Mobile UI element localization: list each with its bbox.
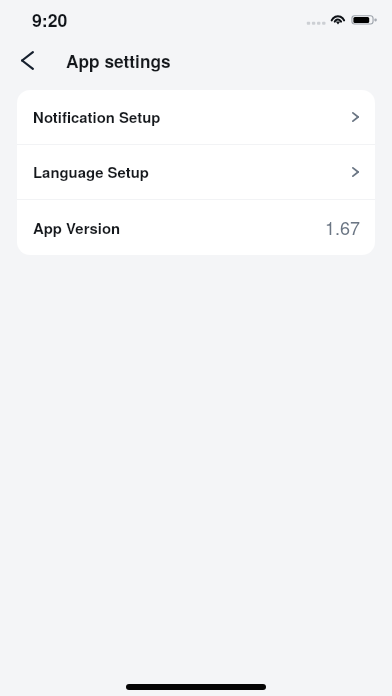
button[interactable]: Language Setup <box>17 145 375 199</box>
staticText: 1.67 <box>325 214 361 240</box>
button[interactable]: Notification Setup <box>17 90 375 144</box>
staticText: Language Setup <box>33 161 149 182</box>
staticText: App Version <box>33 217 121 238</box>
staticText: Notification Setup <box>33 106 161 127</box>
staticText: 9:20 <box>32 7 68 32</box>
staticText: App settings <box>66 49 171 74</box>
button[interactable]: Back <box>9 42 45 78</box>
